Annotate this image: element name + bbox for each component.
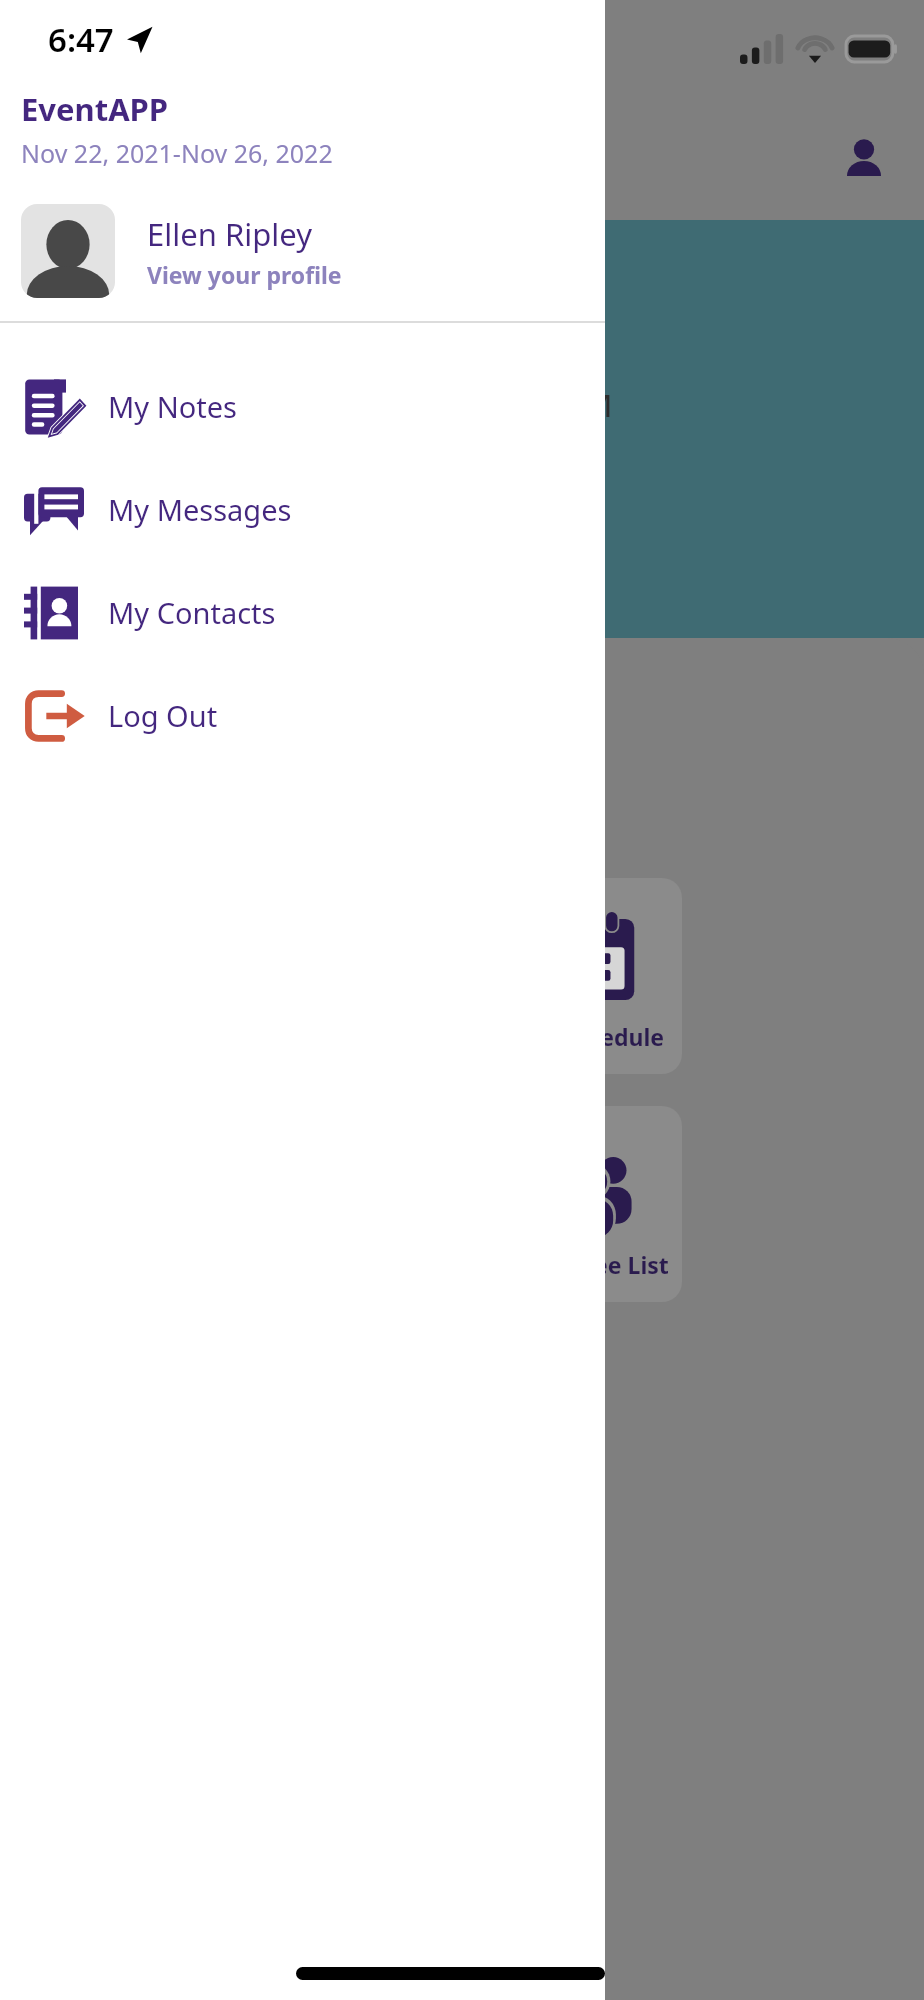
button[interactable]: Attendee List [502,1106,682,1302]
staticText: EventAPP [21,88,169,130]
button[interactable]: Notes [0,355,605,458]
staticText: My Schedule [520,1021,665,1052]
staticText: Nov 22, 2021-Nov 26, 2022 [21,136,333,170]
staticText: My Notes [108,387,237,426]
button[interactable]: Log Out [0,664,605,767]
staticText: EventAPP [231,379,568,480]
button[interactable]: Messages [0,458,605,561]
staticText: Log Out [108,696,218,735]
staticText: Ellen Ripley [147,213,312,255]
other: Log Out [22,684,86,748]
staticText: View your profile [147,259,342,290]
staticText: My Contacts [108,593,276,632]
other: Notes [24,377,84,437]
button[interactable]: My Schedule [502,878,682,1074]
other: Contacts [24,583,84,643]
staticText: My Messages [108,490,292,529]
staticText: Attendee List [515,1249,669,1280]
button[interactable]: Contacts [0,561,605,664]
button[interactable]: Profile [838,134,890,186]
button[interactable]: Ellen Ripley [0,202,605,300]
other: Messages [24,480,84,540]
staticText: TM [568,385,613,426]
staticText: 6:47 [48,17,114,62]
